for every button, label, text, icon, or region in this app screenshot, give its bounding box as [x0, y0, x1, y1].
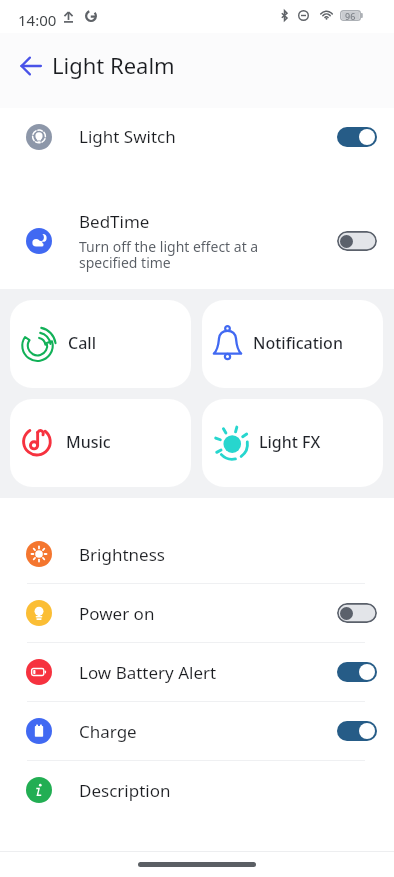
staticText: Charge [79, 720, 137, 743]
button[interactable]: Power on [0, 584, 394, 642]
staticText: Low Battery Alert [79, 661, 217, 684]
button[interactable]: Toggle off [337, 603, 377, 623]
button[interactable]: Back [13, 48, 49, 84]
button[interactable]: Description [0, 761, 394, 819]
button[interactable]: Brightness [0, 525, 394, 583]
staticText: Light Switch [79, 125, 176, 148]
button[interactable]: Notification [202, 300, 383, 388]
button[interactable]: Light FX [202, 399, 383, 487]
staticText: Turn off the light effect at a specified… [79, 237, 263, 272]
staticText: Notification [253, 332, 343, 354]
button[interactable]: Music [10, 399, 191, 487]
staticText: Description [79, 779, 171, 802]
staticText: 14:00 [18, 10, 57, 30]
button[interactable]: Toggle off [337, 231, 377, 251]
button[interactable]: Low Battery Alert [0, 643, 394, 701]
staticText: Light Realm [52, 50, 175, 80]
staticText: Light FX [259, 431, 321, 453]
button[interactable]: Toggle on [337, 127, 377, 147]
other: Google [85, 10, 97, 22]
button[interactable]: Toggle on [337, 662, 377, 682]
staticText: Brightness [79, 543, 165, 566]
staticText: BedTime [79, 210, 150, 233]
button[interactable]: Call [10, 300, 191, 388]
staticText: Call [68, 332, 96, 354]
staticText: Power on [79, 602, 155, 625]
button[interactable]: Charge [0, 702, 394, 760]
staticText: 96 [345, 10, 356, 21]
button[interactable]: Toggle on [337, 721, 377, 741]
staticText: Music [66, 431, 111, 453]
button[interactable]: Light Switch [0, 108, 394, 165]
button[interactable]: BedTime [0, 194, 394, 288]
